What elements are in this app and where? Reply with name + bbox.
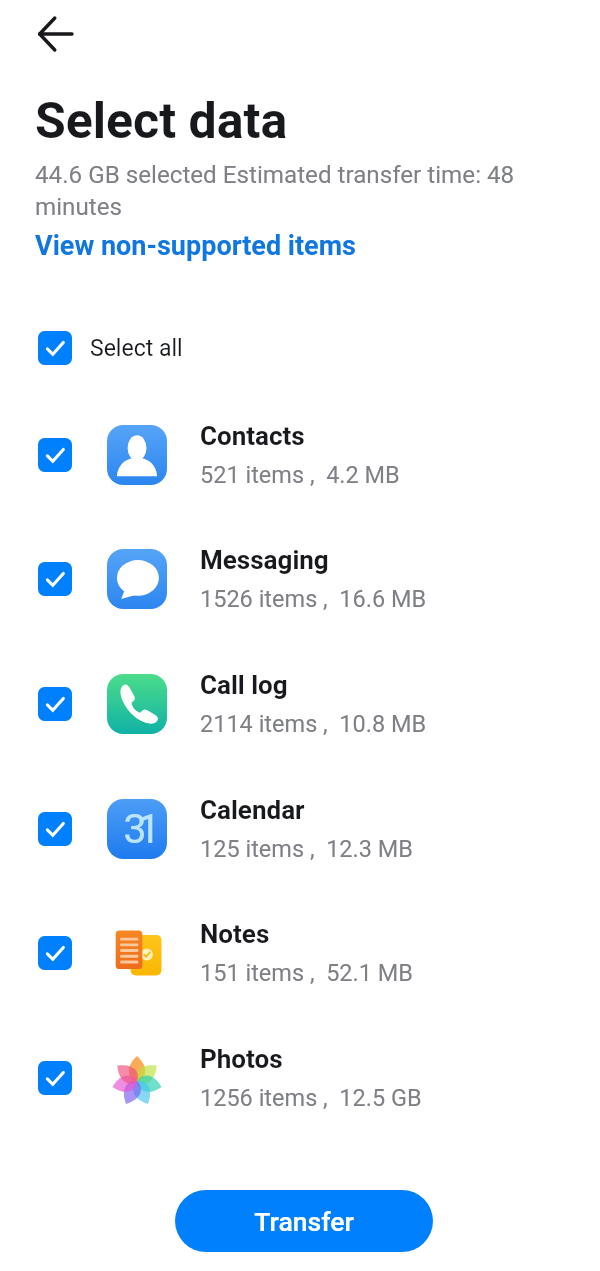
staticText: 125 items , 12.3 MB — [200, 835, 413, 863]
staticText: Call log — [200, 670, 288, 700]
staticText: Messaging — [200, 545, 329, 575]
staticText: 44.6 GB selected Estimated transfer time… — [35, 161, 535, 221]
staticText: Select all — [90, 335, 183, 362]
button[interactable]: Select all — [0, 322, 600, 374]
button[interactable]: Notes — [0, 911, 600, 995]
staticText: 31 — [123, 805, 152, 853]
button[interactable]: Call log — [0, 662, 600, 746]
button[interactable]: Messaging — [0, 537, 600, 621]
button[interactable]: Contacts — [0, 413, 600, 497]
staticText: 151 items , 52.1 MB — [200, 959, 413, 987]
button[interactable]: Back — [22, 2, 88, 68]
staticText: 1256 items , 12.5 GB — [200, 1084, 422, 1112]
staticText: 521 items , 4.2 MB — [200, 461, 400, 489]
staticText: Photos — [200, 1044, 283, 1074]
staticText: 1526 items , 16.6 MB — [200, 585, 427, 613]
button[interactable]: Photos — [0, 1036, 600, 1120]
button[interactable]: 31 — [0, 787, 600, 871]
staticText: Contacts — [200, 421, 305, 451]
button[interactable]: View non-supported items — [35, 226, 356, 266]
staticText: Calendar — [200, 795, 305, 825]
button[interactable]: Transfer — [175, 1190, 433, 1252]
staticText: Notes — [200, 919, 270, 949]
staticText: Select data — [35, 92, 288, 151]
staticText: View non-supported items — [35, 230, 356, 262]
staticText: 2114 items , 10.8 MB — [200, 710, 427, 738]
staticText: Transfer — [254, 1206, 354, 1237]
